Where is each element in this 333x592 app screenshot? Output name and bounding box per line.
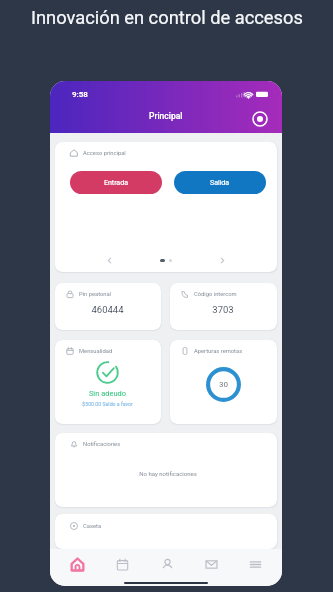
button[interactable]: Caseta [55, 514, 277, 549]
button[interactable]: Pin peatonal [55, 283, 161, 330]
staticText: 9:58 [72, 90, 88, 99]
button[interactable]: Menú [233, 549, 277, 580]
staticText: Pin peatonal [79, 291, 112, 298]
button[interactable]: Siguiente [215, 253, 229, 267]
staticText: 3703 [179, 304, 267, 315]
staticText: Sin adeudo [64, 389, 151, 398]
button[interactable]: Mensajes [189, 549, 233, 580]
staticText: Acceso principal [83, 150, 126, 157]
staticText: Notificaciones [83, 441, 121, 448]
staticText: Código intercom [194, 291, 237, 298]
button[interactable]: Notificaciones [55, 433, 277, 507]
button[interactable]: Entrada [70, 171, 162, 194]
staticText: Principal [149, 111, 183, 121]
button[interactable]: Código intercom [170, 283, 277, 330]
button[interactable]: Salida [174, 171, 266, 194]
staticText: 30 [219, 380, 228, 389]
staticText: No hay notificaciones [70, 470, 266, 477]
button[interactable]: Aperturas remotas [170, 340, 277, 424]
button[interactable]: Estado [250, 109, 270, 129]
staticText: Mensualidad [79, 348, 113, 355]
staticText: $500.00 Saldo a favor [64, 401, 151, 407]
staticText: Entrada [104, 179, 128, 187]
staticText: 460444 [64, 304, 151, 315]
staticText: Caseta [83, 523, 102, 530]
button[interactable]: Acceso principal [55, 142, 277, 272]
button[interactable]: Anterior [102, 253, 116, 267]
button[interactable]: Inicio [55, 549, 100, 580]
button[interactable]: Mensualidad [55, 340, 161, 424]
staticText: Aperturas remotas [194, 348, 243, 355]
staticText: Innovación en control de accesos [31, 7, 303, 28]
button[interactable]: Perfil [145, 549, 189, 580]
staticText: Salida [210, 179, 230, 187]
button[interactable]: Calendario [100, 549, 145, 580]
